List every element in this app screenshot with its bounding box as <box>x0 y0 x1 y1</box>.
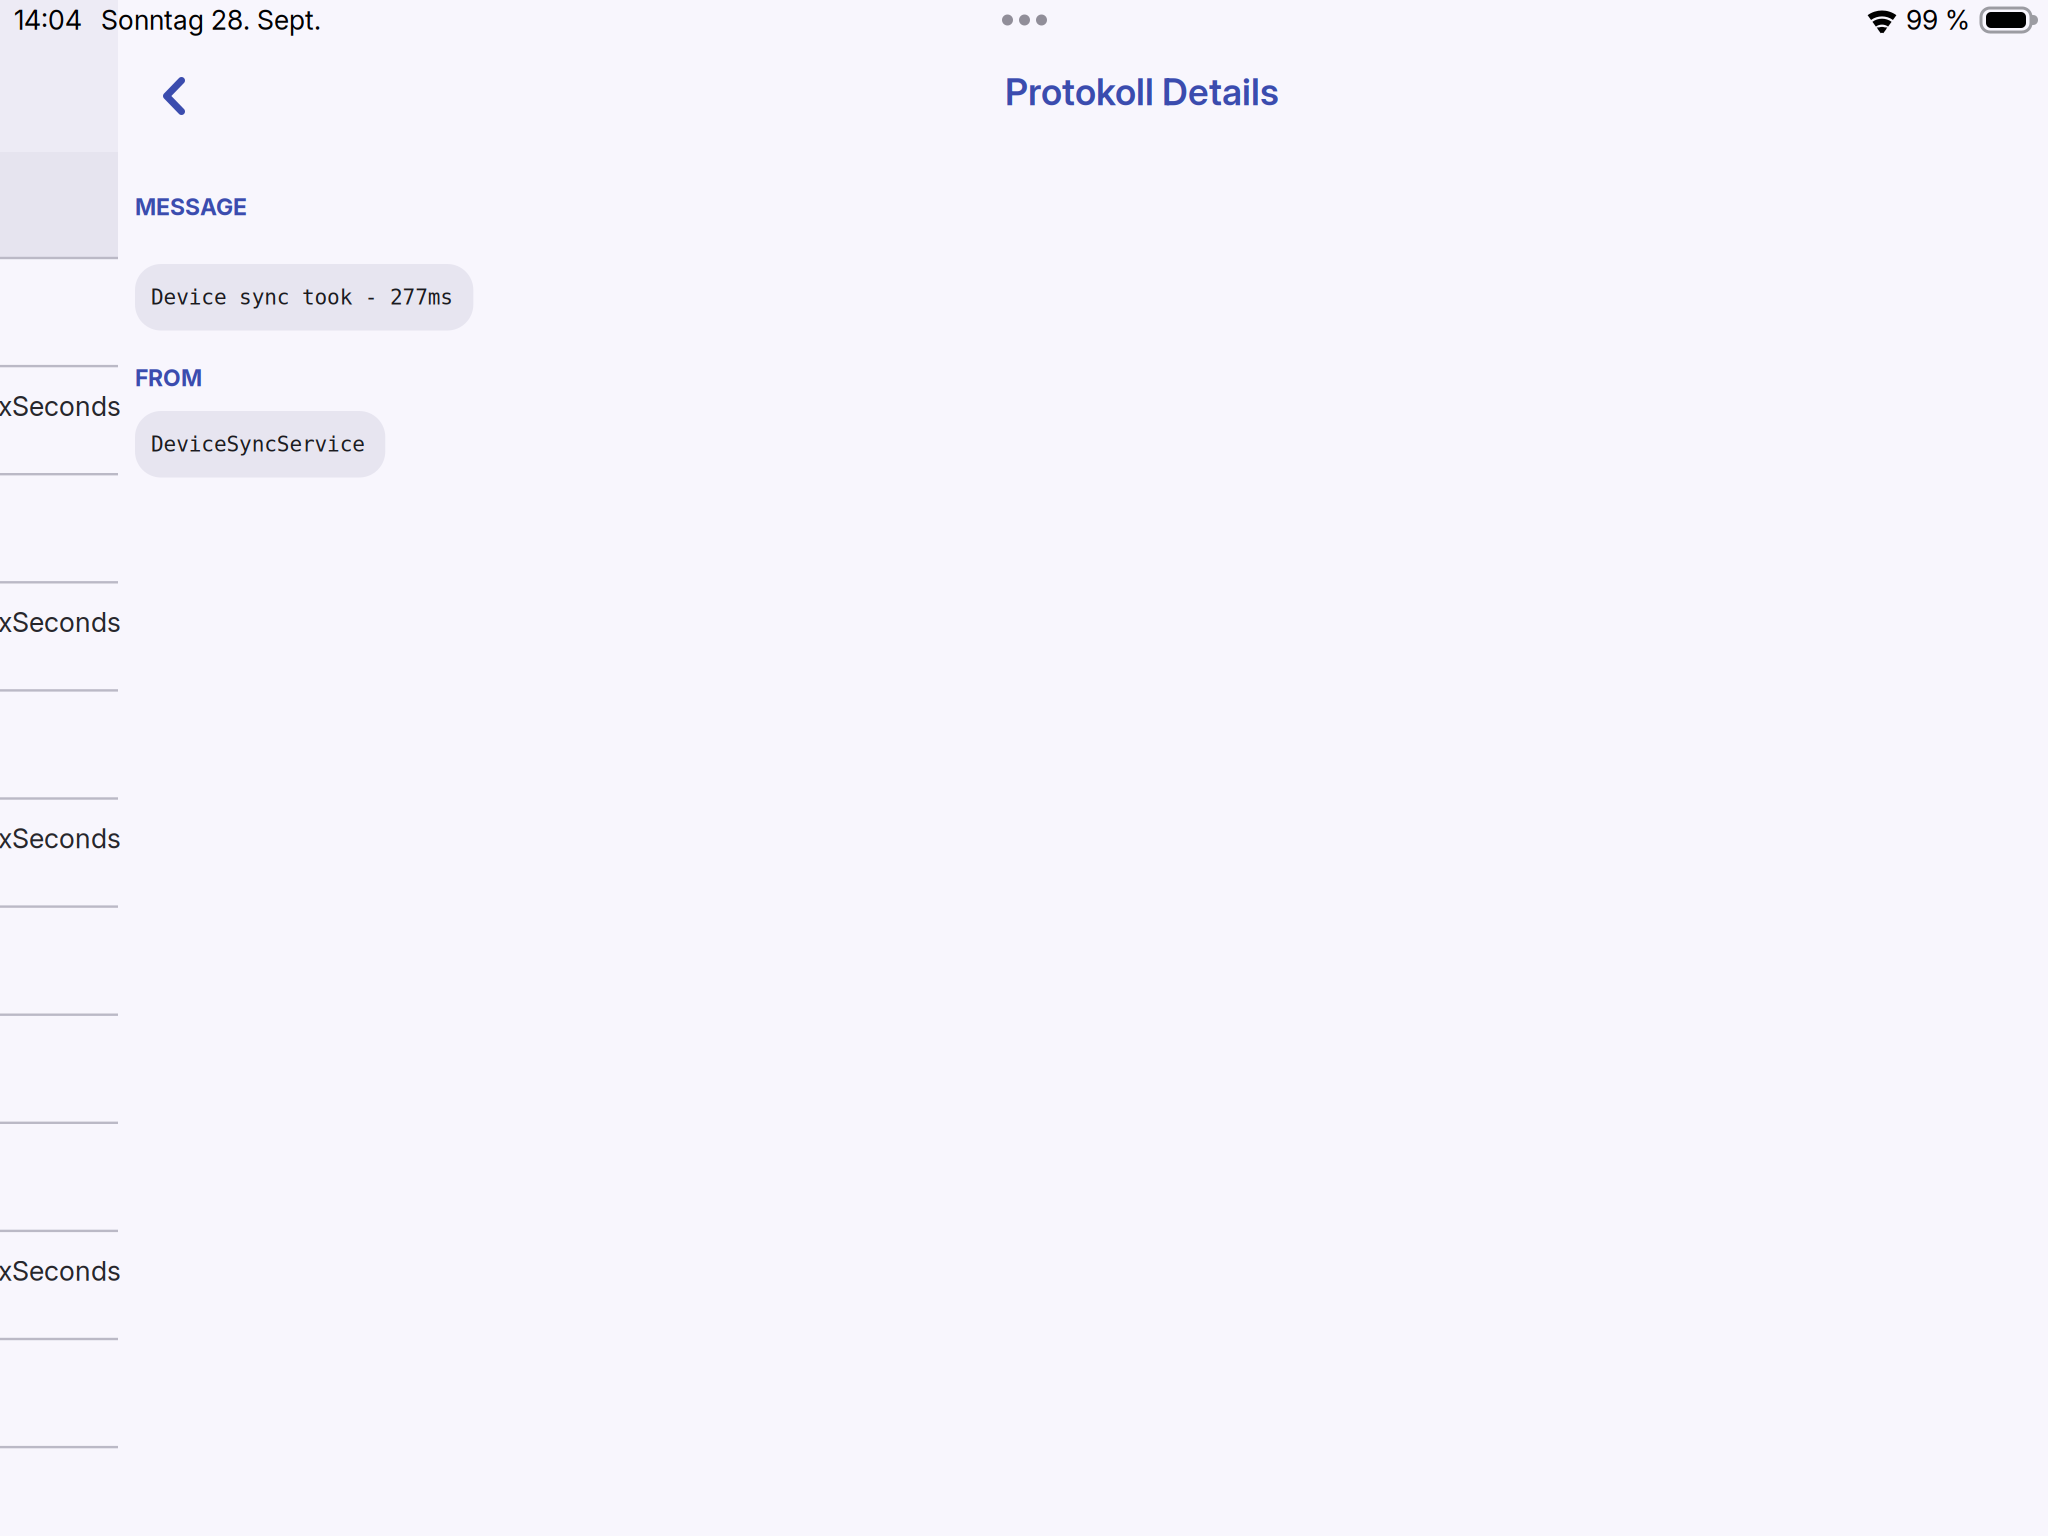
staticText: 99 % <box>1906 4 1970 36</box>
button[interactable]: maxSeconds log entry <box>0 0 118 1536</box>
button[interactable]: Multitasking options <box>0 0 2048 1536</box>
staticText: maxSeconds <box>0 606 121 639</box>
staticText: Protokoll Details <box>1005 70 1279 114</box>
staticText: MESSAGE <box>135 193 247 221</box>
button[interactable]: maxSeconds log entry <box>0 0 118 1536</box>
button[interactable]: maxSeconds log entry <box>0 0 118 1536</box>
staticText: maxSeconds <box>0 1255 121 1287</box>
staticText: 14:04 <box>14 4 82 36</box>
staticText: Sonntag 28. Sept. <box>101 4 321 36</box>
staticText: Device sync took - 277ms <box>151 285 453 309</box>
staticText: DeviceSyncService <box>151 432 365 456</box>
staticText: maxSeconds <box>0 390 121 422</box>
button[interactable]: Back <box>0 0 2048 1536</box>
staticText: FROM <box>135 364 202 392</box>
staticText: maxSeconds <box>0 822 121 855</box>
button[interactable]: maxSeconds log entry <box>0 0 118 1536</box>
